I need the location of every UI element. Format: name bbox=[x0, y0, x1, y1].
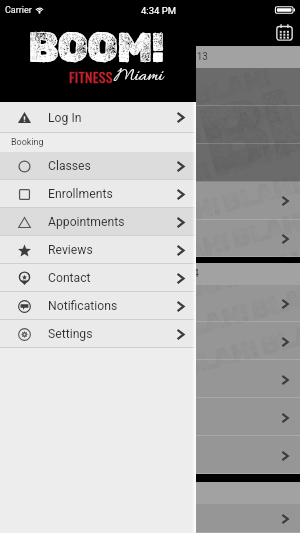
staticText: Thursday, November 14 bbox=[94, 268, 199, 280]
button[interactable] bbox=[0, 399, 300, 437]
button[interactable] bbox=[0, 144, 300, 182]
staticText: BLAH! BLAH! BLAH! bbox=[31, 62, 274, 155]
staticText: Notifications bbox=[48, 299, 118, 313]
staticText: FITNESS bbox=[69, 66, 113, 87]
button[interactable]: Enrollments bbox=[0, 180, 196, 208]
button[interactable]: Notifications bbox=[0, 292, 196, 320]
staticText: Reviews bbox=[48, 243, 93, 257]
button[interactable] bbox=[0, 436, 300, 474]
staticText: Contact bbox=[48, 271, 91, 285]
staticText: BLAH! BLAH! BLAH! bbox=[21, 26, 265, 119]
button[interactable]: Reviews bbox=[0, 236, 196, 264]
staticText: BLAH! BLAH! BLAH! bbox=[88, 276, 300, 369]
staticText: Booking bbox=[11, 137, 44, 148]
staticText: BLAH! BLAH! BLAH! bbox=[98, 312, 300, 405]
button[interactable]: Settings bbox=[0, 320, 196, 348]
staticText: 4:34 PM bbox=[141, 5, 176, 16]
button[interactable] bbox=[0, 361, 300, 399]
staticText: Enrollments bbox=[48, 187, 113, 201]
button[interactable] bbox=[0, 437, 300, 475]
staticText: BOOM! bbox=[28, 23, 164, 73]
staticText: Carrier bbox=[5, 5, 32, 16]
button[interactable] bbox=[0, 502, 300, 533]
button[interactable] bbox=[0, 285, 300, 323]
staticText: Appointments bbox=[48, 215, 125, 229]
button[interactable] bbox=[0, 182, 300, 220]
button[interactable] bbox=[0, 144, 300, 182]
button[interactable] bbox=[0, 220, 300, 257]
staticText: Log In bbox=[48, 111, 82, 125]
button[interactable] bbox=[0, 360, 300, 398]
staticText: BLAH! BLAH! BLAH! bbox=[59, 169, 300, 262]
button[interactable] bbox=[0, 68, 300, 106]
button[interactable] bbox=[0, 68, 300, 106]
staticText: Miami bbox=[114, 65, 164, 89]
staticText: BLAH! BLAH! BLAH! bbox=[78, 240, 300, 334]
staticText: Settings bbox=[48, 327, 93, 341]
staticText: BLAH! BLAH! BLAH! bbox=[69, 205, 300, 298]
button[interactable] bbox=[0, 284, 300, 322]
staticText: Wednesday, November 13 bbox=[93, 51, 208, 63]
button[interactable] bbox=[0, 398, 300, 436]
button[interactable]: Classes bbox=[0, 152, 196, 180]
staticText: Classes bbox=[48, 159, 91, 173]
staticText: BLAH! BLAH! BLAH! bbox=[50, 133, 293, 226]
button[interactable]: Appointments bbox=[0, 208, 196, 236]
button[interactable] bbox=[0, 323, 300, 361]
button[interactable]: Log In bbox=[0, 102, 196, 133]
staticText: BL! bbox=[188, 53, 300, 196]
button[interactable] bbox=[0, 182, 300, 220]
button[interactable] bbox=[0, 106, 300, 144]
button[interactable]: Contact bbox=[0, 264, 196, 292]
button[interactable]: Calendar bbox=[272, 20, 296, 44]
button[interactable] bbox=[0, 504, 300, 533]
button[interactable] bbox=[0, 106, 300, 144]
button[interactable] bbox=[0, 322, 300, 360]
button[interactable] bbox=[0, 220, 300, 257]
staticText: BLAH! BLAH! BLAH! bbox=[40, 98, 284, 191]
